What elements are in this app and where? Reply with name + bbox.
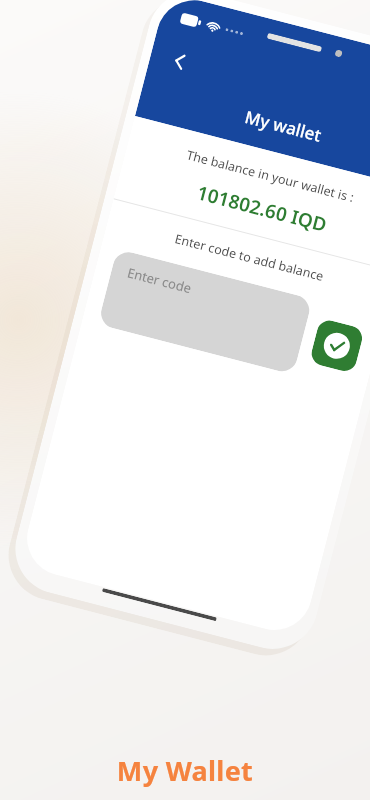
staticText: My Wallet	[0, 752, 370, 789]
button[interactable]: Back	[156, 37, 204, 86]
staticText: My wallet	[243, 105, 324, 147]
button[interactable]: Confirm code	[309, 318, 365, 374]
staticText: Enter code to add balance	[106, 213, 370, 302]
staticText: 101802.60 IQD	[117, 159, 370, 258]
button[interactable]: Enter code	[98, 249, 313, 375]
staticText: The balance in your wallet is :	[127, 131, 370, 221]
staticText: Enter code	[125, 263, 194, 297]
